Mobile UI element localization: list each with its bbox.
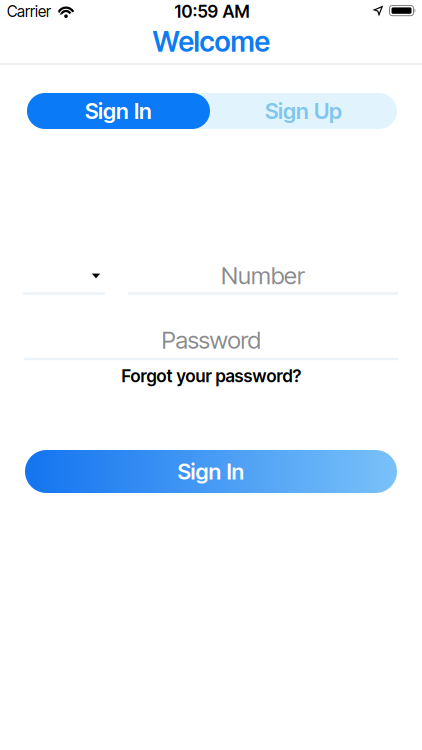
staticText: Carrier xyxy=(7,2,51,21)
staticText: Number xyxy=(221,261,305,290)
staticText: Sign Up xyxy=(265,98,342,124)
button[interactable]: Country code xyxy=(23,262,105,295)
staticText: Sign In xyxy=(177,458,244,485)
staticText: 10:59 AM xyxy=(174,1,249,22)
button[interactable]: Sign Up xyxy=(210,93,397,129)
staticText: Forgot your password? xyxy=(121,365,301,386)
staticText: Welcome xyxy=(152,25,269,58)
button[interactable]: Password xyxy=(24,326,398,361)
staticText: Sign In xyxy=(85,98,152,124)
staticText: Password xyxy=(161,325,260,354)
button[interactable]: Sign In xyxy=(27,93,210,129)
button[interactable]: Forgot your password? xyxy=(121,365,301,386)
button[interactable]: Sign In xyxy=(25,450,397,493)
button[interactable]: Number xyxy=(128,262,398,295)
